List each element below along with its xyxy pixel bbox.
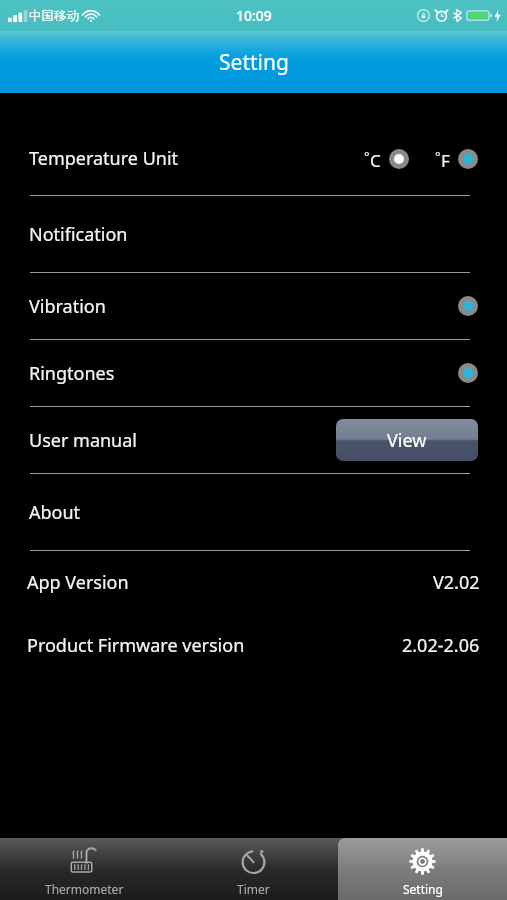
staticText: Vibration (29, 294, 458, 319)
staticText: About (29, 500, 81, 525)
staticText: 中国移动 (29, 8, 79, 24)
staticText: Ringtones (29, 361, 458, 386)
staticText: App Version (27, 570, 433, 595)
staticText: V2.02 (433, 570, 480, 595)
staticText: 2.02-2.06 (402, 633, 480, 658)
button[interactable]: Ringtones (0, 340, 507, 406)
button[interactable]: ° (364, 147, 409, 170)
button[interactable]: Timer (169, 838, 338, 900)
staticText: Setting (403, 881, 443, 897)
button[interactable]: Thermometer (0, 838, 169, 900)
staticText: Setting (219, 48, 289, 77)
staticText: ° (364, 147, 370, 165)
staticText: Product Firmware version (27, 633, 402, 658)
button[interactable]: Vibration (0, 273, 507, 339)
staticText: Temperature Unit (29, 146, 364, 171)
button[interactable]: Setting (338, 838, 507, 900)
staticText: Notification (29, 222, 128, 247)
staticText: Thermometer (45, 881, 124, 897)
staticText: Timer (237, 881, 270, 897)
staticText: C (370, 149, 381, 172)
button[interactable]: ° (435, 147, 478, 170)
staticText: 10:09 (236, 6, 272, 25)
button[interactable]: View (336, 419, 478, 461)
staticText: F (441, 149, 450, 172)
staticText: View (387, 428, 427, 453)
staticText: User manual (29, 428, 336, 453)
staticText: ° (435, 147, 441, 165)
